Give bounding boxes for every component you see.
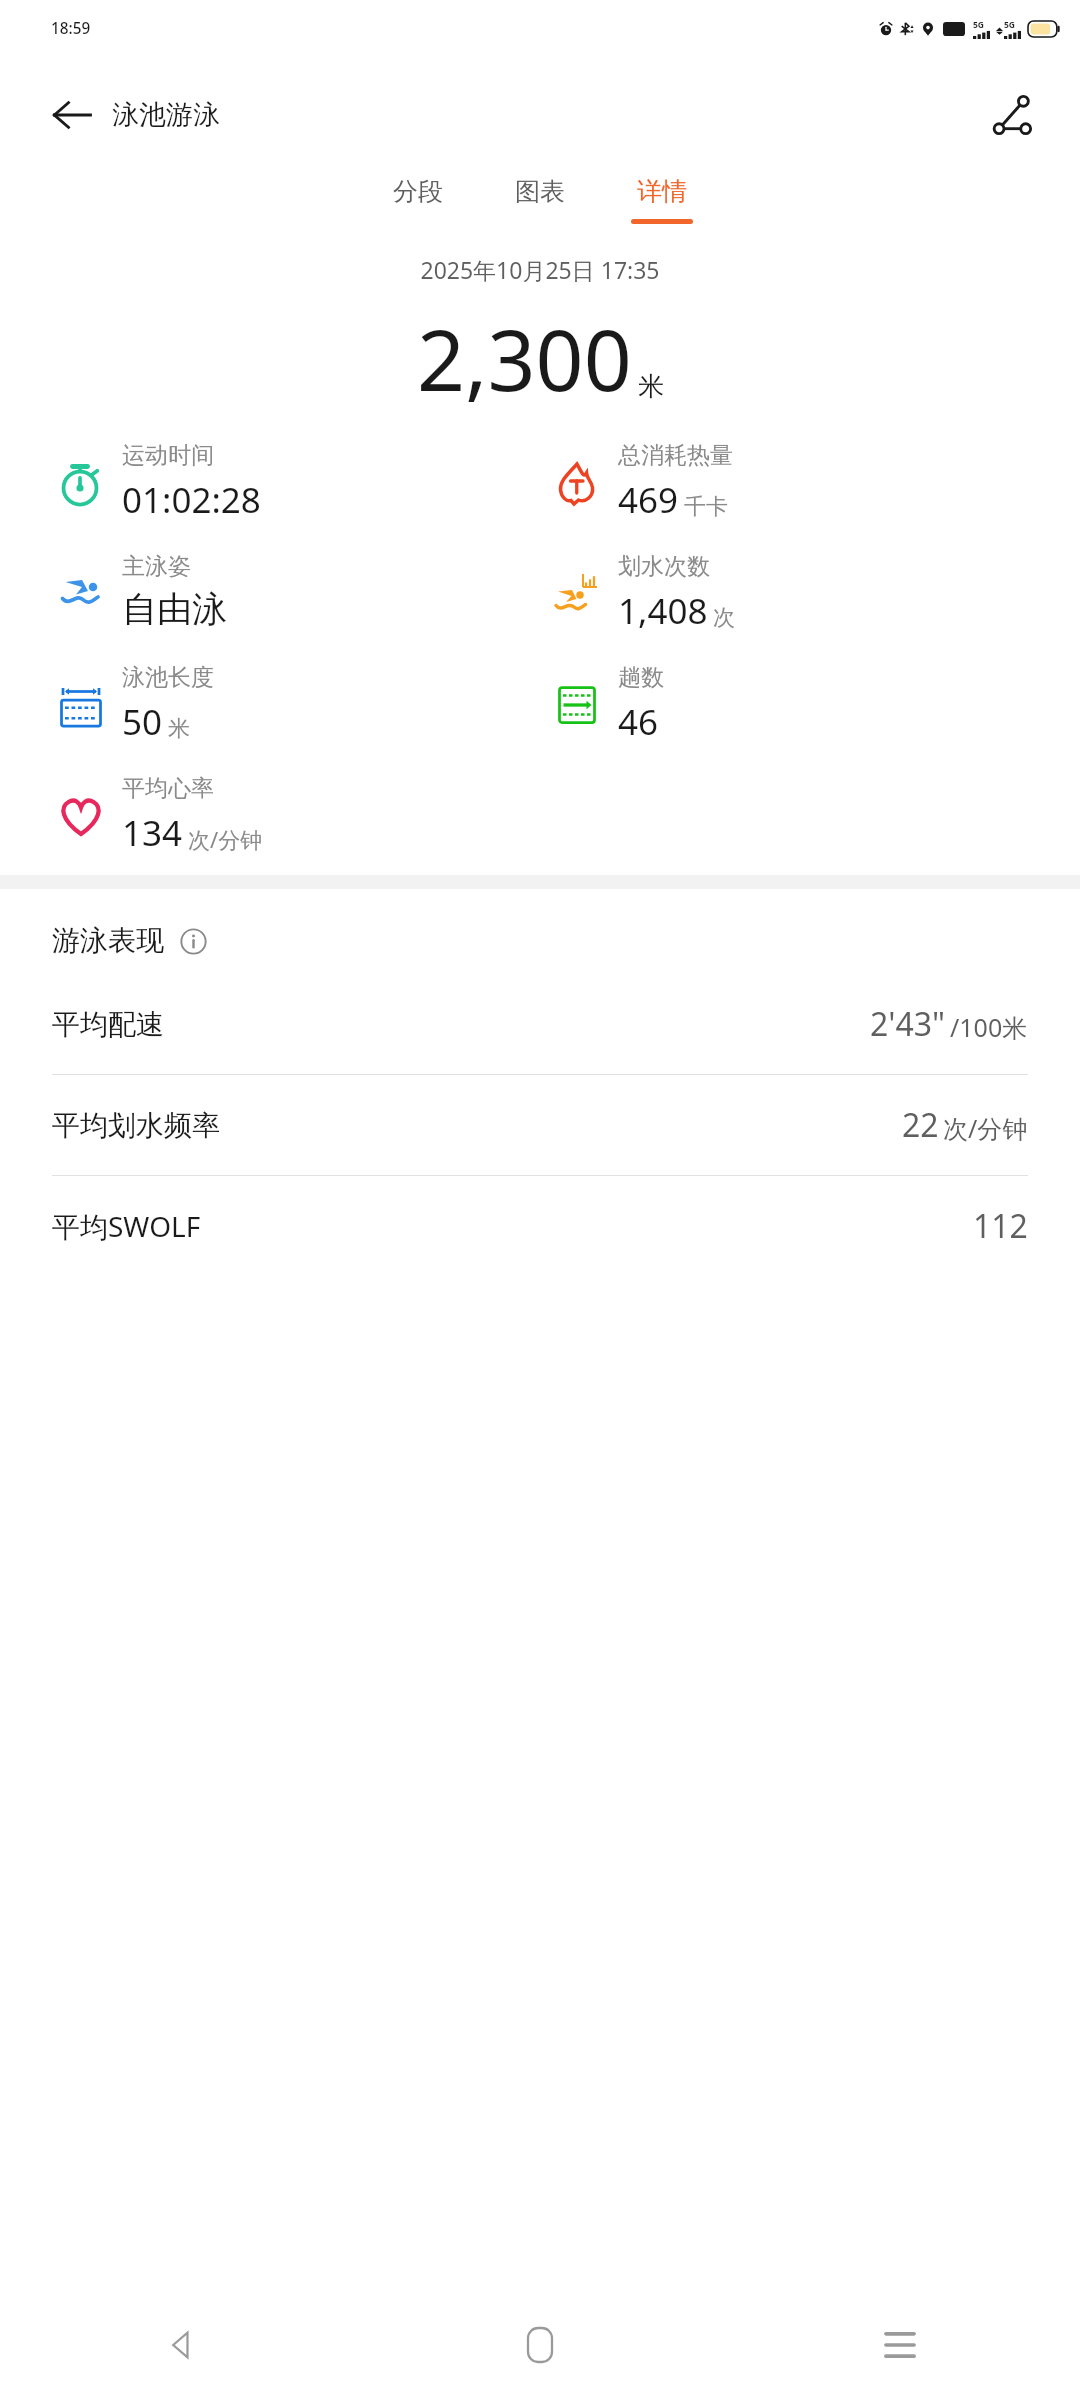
staticText: 泳池游泳	[112, 98, 220, 132]
staticText: 平均配速	[52, 1007, 164, 1042]
staticText: 134	[122, 809, 183, 857]
staticText: 自由泳	[122, 587, 227, 631]
staticText: 分段	[393, 176, 443, 207]
button[interactable]: 平均SWOLF	[0, 1176, 1080, 1276]
button[interactable]: 平均心率	[54, 774, 263, 857]
staticText: 平均心率	[122, 774, 214, 803]
button[interactable]: 分段	[381, 172, 455, 228]
staticText: 总消耗热量	[618, 441, 733, 470]
staticText: 2,300	[417, 301, 632, 415]
staticText: 米	[638, 370, 664, 403]
button[interactable]: Share	[984, 87, 1040, 143]
button[interactable]: Back	[44, 87, 100, 143]
staticText: 1,408	[618, 587, 708, 635]
staticText: 112	[973, 1204, 1028, 1248]
button[interactable]: 平均配速	[0, 974, 1080, 1074]
button[interactable]: 运动时间	[54, 441, 261, 524]
button[interactable]: 图表	[503, 172, 577, 228]
button[interactable]: 划水次数	[550, 552, 735, 635]
button[interactable]: 总消耗热量	[550, 441, 733, 524]
staticText: 平均SWOLF	[52, 1207, 201, 1245]
staticText: 2025年10月25日 17:35	[420, 254, 660, 285]
staticText: 图表	[515, 176, 565, 207]
staticText: 米	[168, 715, 190, 743]
staticText: 01:02:28	[122, 476, 261, 524]
staticText: 18:59	[51, 18, 91, 39]
staticText: 泳池长度	[122, 663, 214, 692]
button[interactable]: 平均划水频率	[0, 1075, 1080, 1175]
staticText: 划水次数	[618, 552, 710, 581]
staticText: 千卡	[684, 493, 728, 521]
button[interactable]: Info	[176, 924, 210, 958]
staticText: 游泳表现	[52, 923, 164, 958]
button[interactable]: 主泳姿	[54, 552, 227, 631]
staticText: 5G	[973, 19, 985, 31]
staticText: 50	[122, 698, 163, 746]
staticText: 运动时间	[122, 441, 214, 470]
button[interactable]: 泳池长度	[54, 663, 214, 746]
button[interactable]: Recent apps	[720, 2290, 1080, 2400]
staticText: 次/分钟	[943, 1111, 1028, 1145]
staticText: 22	[902, 1103, 939, 1147]
staticText: 次	[713, 604, 735, 632]
staticText: 5G	[1004, 19, 1016, 31]
staticText: 2'43"	[870, 1002, 946, 1046]
staticText: 平均划水频率	[52, 1108, 220, 1143]
staticText: 次/分钟	[188, 824, 263, 854]
button[interactable]: 详情	[625, 172, 699, 228]
staticText: 主泳姿	[122, 552, 191, 581]
staticText: 46	[618, 698, 659, 746]
staticText: 趟数	[618, 663, 664, 692]
button[interactable]: 趟数	[550, 663, 664, 746]
staticText: 详情	[637, 176, 687, 207]
staticText: 469	[618, 476, 679, 524]
staticText: /100米	[950, 1010, 1028, 1044]
button[interactable]: Home	[360, 2290, 720, 2400]
button[interactable]: Back	[0, 2290, 360, 2400]
